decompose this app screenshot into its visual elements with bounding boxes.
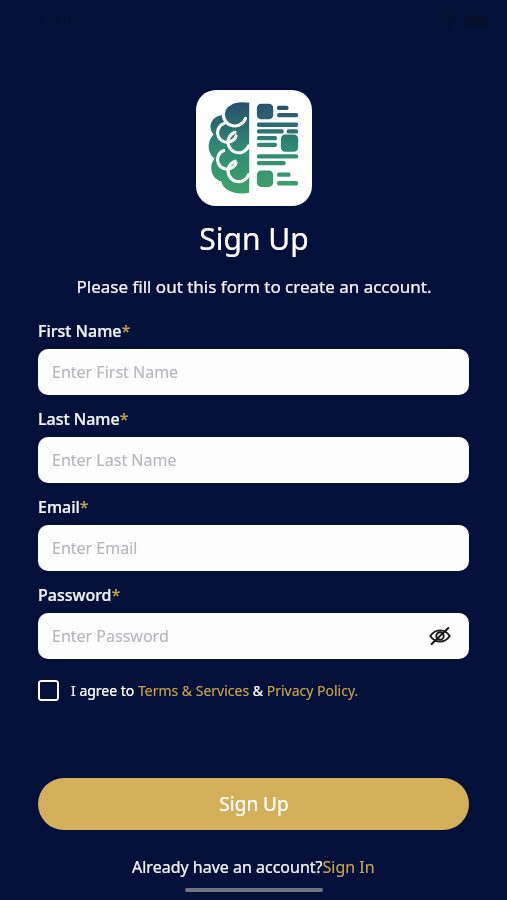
button[interactable]: Enter First Name — [38, 349, 469, 395]
staticText: Sign Up — [219, 791, 289, 817]
button[interactable]: I agree to Terms & Services & Privacy Po… — [38, 680, 469, 701]
staticText: Already have an account?Sign In — [132, 856, 375, 878]
staticText: Email* — [38, 496, 89, 518]
button[interactable]: Enter Last Name — [38, 437, 469, 483]
button[interactable]: Enter Password — [38, 613, 469, 659]
staticText: First Name* — [38, 320, 131, 342]
staticText: Enter Email — [52, 537, 138, 559]
staticText: Enter Password — [52, 625, 169, 647]
staticText: Last Name* — [38, 408, 129, 430]
staticText: I agree to Terms & Services & Privacy Po… — [71, 681, 359, 700]
button[interactable]: Show password — [425, 621, 455, 651]
staticText: Sign Up — [199, 218, 309, 259]
button[interactable]: Sign Up — [38, 778, 469, 830]
staticText: Password* — [38, 584, 121, 606]
button[interactable]: Already have an account?Sign In — [0, 856, 507, 878]
button[interactable]: Enter Email — [38, 525, 469, 571]
staticText: Enter First Name — [52, 361, 179, 383]
staticText: Enter Last Name — [52, 449, 177, 471]
staticText: Please fill out this form to create an a… — [76, 275, 432, 298]
